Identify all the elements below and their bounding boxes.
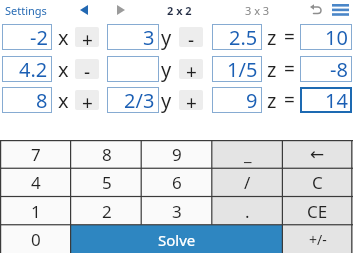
staticText: 4.2: [19, 56, 48, 82]
staticText: +: [82, 90, 93, 110]
staticText: y: [161, 87, 172, 113]
staticText: -8: [330, 56, 348, 82]
button[interactable]: 6: [141, 168, 212, 196]
staticText: 14: [325, 87, 348, 113]
button[interactable]: [76, 3, 92, 17]
button[interactable]: CE: [282, 197, 353, 225]
staticText: 0: [31, 228, 41, 251]
button[interactable]: 8: [2, 87, 52, 113]
button[interactable]: ←: [282, 140, 353, 168]
button[interactable]: 1: [0, 197, 71, 225]
button[interactable]: [306, 2, 324, 18]
staticText: 2: [102, 200, 112, 223]
button[interactable]: 9: [212, 87, 262, 113]
button[interactable]: [330, 2, 350, 18]
staticText: ←: [310, 144, 325, 164]
button[interactable]: 8: [71, 140, 142, 168]
button[interactable]: 0: [0, 225, 71, 253]
staticText: 2/3: [124, 87, 155, 113]
button[interactable]: _: [212, 140, 283, 168]
staticText: z: [267, 24, 277, 50]
button[interactable]: 2 x 2: [163, 2, 195, 18]
staticText: 5: [102, 171, 112, 194]
button[interactable]: +: [179, 90, 203, 110]
staticText: =: [284, 24, 295, 50]
staticText: +/-: [309, 230, 327, 249]
staticText: =: [284, 87, 295, 113]
button[interactable]: 4.2: [2, 56, 52, 82]
staticText: 9: [246, 87, 258, 113]
staticText: Settings: [5, 3, 47, 18]
staticText: 9: [172, 143, 182, 166]
staticText: +: [82, 27, 93, 47]
button[interactable]: [107, 56, 159, 82]
button[interactable]: 4: [0, 168, 71, 196]
button[interactable]: 3: [107, 24, 159, 50]
button[interactable]: Settings: [5, 2, 51, 18]
staticText: -: [84, 59, 91, 79]
button[interactable]: 2: [71, 197, 142, 225]
staticText: 8: [36, 87, 48, 113]
button[interactable]: -8: [300, 56, 352, 82]
button[interactable]: +: [75, 90, 99, 110]
staticText: +: [186, 59, 197, 79]
button[interactable]: 14: [300, 87, 352, 113]
staticText: 2 x 2: [167, 3, 192, 18]
button[interactable]: 5: [71, 168, 142, 196]
staticText: 1: [31, 200, 41, 223]
button[interactable]: 2.5: [212, 24, 262, 50]
staticText: -2: [30, 24, 48, 50]
button[interactable]: +/-: [282, 225, 353, 253]
staticText: 3 x 3: [245, 3, 270, 18]
button[interactable]: [113, 3, 129, 17]
staticText: z: [267, 56, 277, 82]
staticText: 7: [31, 143, 41, 166]
button[interactable]: C: [282, 168, 353, 196]
staticText: 3: [143, 24, 155, 50]
button[interactable]: +: [75, 27, 99, 47]
button[interactable]: /: [212, 168, 283, 196]
button[interactable]: 2/3: [107, 87, 159, 113]
button[interactable]: 7: [0, 140, 71, 168]
staticText: -: [188, 27, 195, 47]
staticText: 8: [102, 143, 112, 166]
staticText: 10: [325, 24, 348, 50]
staticText: z: [267, 87, 277, 113]
button[interactable]: -: [179, 27, 203, 47]
button[interactable]: -: [75, 59, 99, 79]
staticText: .: [245, 200, 250, 223]
staticText: CE: [307, 200, 328, 223]
staticText: Solve: [158, 230, 196, 250]
staticText: 4: [31, 171, 41, 194]
staticText: 1/5: [227, 56, 258, 82]
staticText: C: [312, 171, 323, 194]
button[interactable]: 3: [141, 197, 212, 225]
staticText: x: [58, 56, 69, 82]
button[interactable]: Solve: [71, 225, 283, 253]
staticText: x: [58, 87, 69, 113]
button[interactable]: +: [179, 59, 203, 79]
button[interactable]: 10: [300, 24, 352, 50]
button[interactable]: 9: [141, 140, 212, 168]
staticText: 6: [172, 171, 182, 194]
staticText: x: [58, 24, 69, 50]
staticText: /: [244, 171, 251, 194]
button[interactable]: 1/5: [212, 56, 262, 82]
staticText: =: [284, 56, 295, 82]
button[interactable]: 3 x 3: [241, 2, 273, 18]
staticText: y: [161, 56, 172, 82]
staticText: _: [244, 143, 252, 166]
staticText: 3: [172, 200, 182, 223]
staticText: +: [186, 90, 197, 110]
button[interactable]: .: [212, 197, 283, 225]
staticText: 2.5: [229, 24, 258, 50]
button[interactable]: -2: [2, 24, 52, 50]
staticText: y: [161, 24, 172, 50]
